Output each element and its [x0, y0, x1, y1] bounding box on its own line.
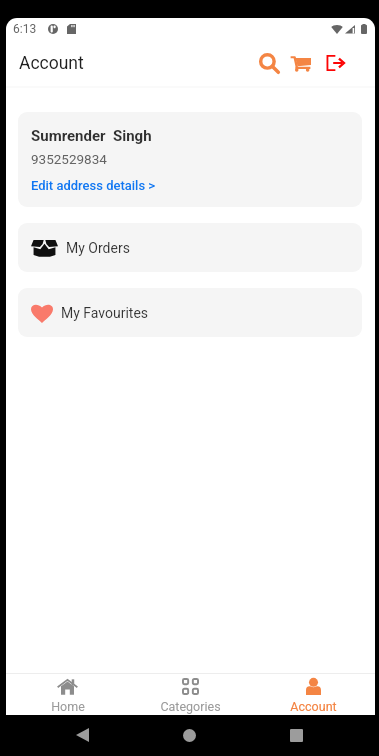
button[interactable]: Logout — [324, 50, 346, 76]
staticText: Account — [19, 53, 84, 74]
button[interactable]: My Orders — [18, 223, 362, 272]
button[interactable]: Sumrender Singh — [18, 112, 362, 207]
staticText: Home — [51, 699, 85, 714]
button[interactable]: My Favourites — [18, 288, 362, 337]
button[interactable]: Home — [6, 676, 129, 714]
button[interactable]: Home — [136, 724, 243, 746]
staticText: Categories — [160, 699, 221, 714]
button[interactable]: Back — [29, 724, 136, 746]
staticText: 9352529834 — [31, 151, 107, 167]
button[interactable]: Search — [256, 50, 282, 76]
staticText: Sumrender Singh — [31, 127, 152, 145]
button[interactable]: Cart — [287, 50, 313, 76]
staticText: My Favourites — [61, 305, 149, 321]
staticText: Edit address details > — [31, 178, 156, 193]
button[interactable]: Categories — [129, 675, 252, 714]
staticText: My Orders — [66, 240, 130, 256]
staticText: 6:13 — [13, 22, 37, 36]
button[interactable]: Recent apps — [243, 724, 350, 746]
staticText: Account — [290, 699, 337, 714]
button[interactable]: Account — [252, 675, 375, 714]
